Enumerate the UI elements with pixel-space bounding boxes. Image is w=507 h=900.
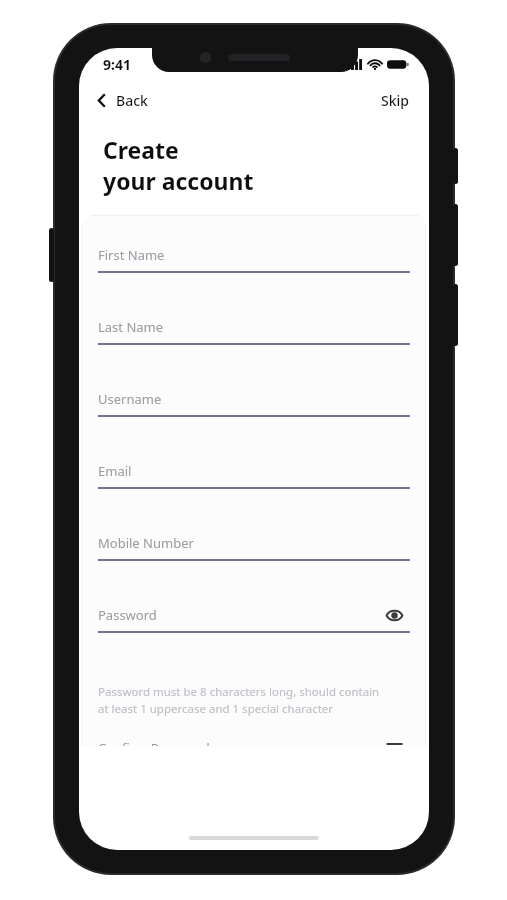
staticText: Password: [98, 606, 157, 624]
staticText: Username: [98, 390, 162, 408]
button[interactable]: Show password: [381, 605, 408, 626]
staticText: Create: [103, 134, 179, 165]
staticText: First Name: [98, 246, 165, 264]
staticText: your account: [103, 165, 254, 196]
staticText: 9:41: [103, 55, 131, 74]
button[interactable]: Skip: [373, 87, 417, 114]
button[interactable]: Show password: [381, 739, 408, 746]
staticText: Skip: [381, 91, 409, 110]
staticText: Mobile Number: [98, 534, 194, 552]
button[interactable]: Back: [89, 87, 156, 114]
staticText: Confirm Password: [98, 739, 210, 746]
staticText: Email: [98, 462, 132, 480]
staticText: Last Name: [98, 318, 164, 336]
staticText: Back: [116, 91, 148, 110]
staticText: Password must be 8 characters long, shou…: [98, 684, 380, 717]
